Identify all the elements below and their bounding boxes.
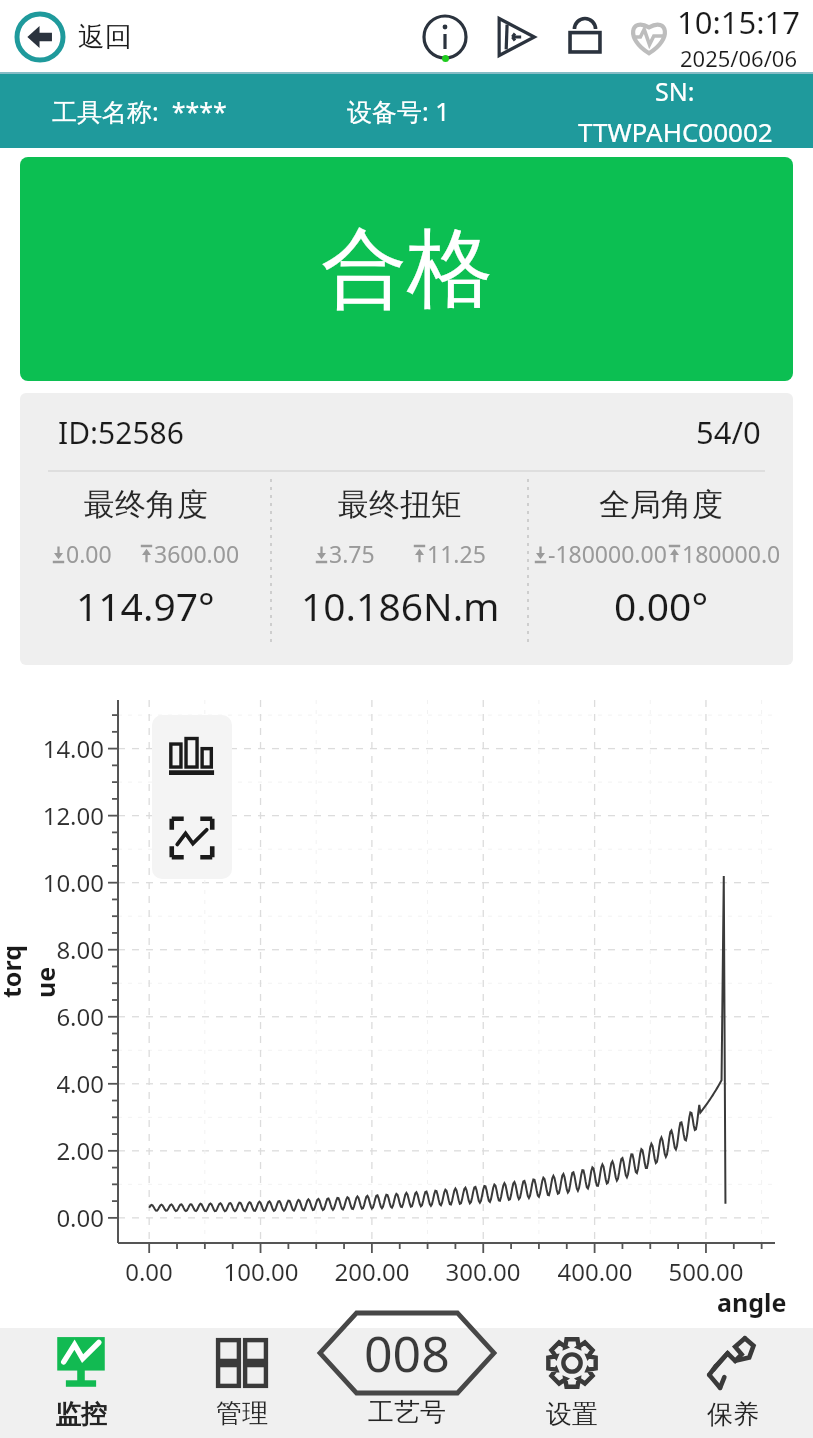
staticText: 180000.00	[682, 538, 789, 569]
staticText: 3.75	[329, 538, 375, 569]
staticText: 54/0	[696, 411, 761, 453]
staticText: 返回	[78, 20, 132, 54]
staticText: 监控	[55, 1398, 107, 1431]
staticText: 114.97°	[76, 579, 215, 632]
staticText: angle	[717, 1285, 787, 1319]
staticText: 11.25	[427, 538, 486, 569]
staticText: SN:	[655, 74, 695, 108]
staticText: 最终角度	[84, 485, 208, 524]
staticText: 保养	[707, 1398, 759, 1431]
button[interactable]: 设置	[491, 1328, 652, 1438]
staticText: torque	[0, 942, 62, 998]
button[interactable]: Bar chart view	[152, 715, 232, 797]
staticText: 管理	[216, 1397, 268, 1430]
button[interactable]: Lock	[559, 11, 611, 63]
staticText: 10.00	[6, 866, 104, 899]
staticText: 0.00°	[614, 579, 709, 632]
staticText: 设置	[546, 1398, 598, 1431]
staticText: 008	[364, 1319, 450, 1387]
staticText: 200.00	[315, 1255, 429, 1288]
staticText: 8.00	[6, 933, 104, 966]
staticText: 2.00	[6, 1134, 104, 1167]
staticText: 14.00	[6, 732, 104, 765]
button[interactable]: 008	[312, 1310, 502, 1438]
staticText: TTWPAHC00002	[578, 114, 773, 148]
staticText: 4.00	[6, 1067, 104, 1100]
staticText: 设备号: 1	[347, 94, 450, 128]
button[interactable]: 返回	[14, 11, 142, 63]
staticText: -180000.00	[548, 538, 667, 569]
button[interactable]: 保养	[652, 1328, 813, 1438]
staticText: 工具名称: ****	[52, 94, 227, 128]
staticText: 10.186N.m	[301, 579, 500, 632]
staticText: 12.00	[6, 799, 104, 832]
staticText: 100.00	[204, 1255, 318, 1288]
staticText: 全局角度	[599, 485, 723, 524]
button[interactable]: Info	[419, 11, 471, 63]
staticText: 0.00	[92, 1255, 206, 1288]
staticText: 0.00	[6, 1201, 104, 1234]
staticText: 工艺号	[368, 1396, 446, 1429]
button[interactable]: Transfer	[489, 11, 541, 63]
staticText: 300.00	[426, 1255, 540, 1288]
button[interactable]: 管理	[161, 1328, 322, 1438]
staticText: 2025/06/06	[680, 43, 798, 73]
staticText: 10:15:17	[677, 1, 801, 43]
staticText: 最终扭矩	[338, 485, 462, 524]
staticText: 500.00	[649, 1255, 763, 1288]
staticText: ID:52586	[58, 412, 184, 453]
button[interactable]: Line chart view	[152, 797, 232, 879]
staticText: 3600.00	[154, 538, 240, 569]
button[interactable]: 监控	[0, 1328, 161, 1438]
button[interactable]: 合格	[20, 157, 793, 381]
staticText: 400.00	[538, 1255, 652, 1288]
staticText: 6.00	[6, 1000, 104, 1033]
staticText: 0.00	[66, 538, 112, 569]
staticText: 合格	[321, 215, 493, 323]
